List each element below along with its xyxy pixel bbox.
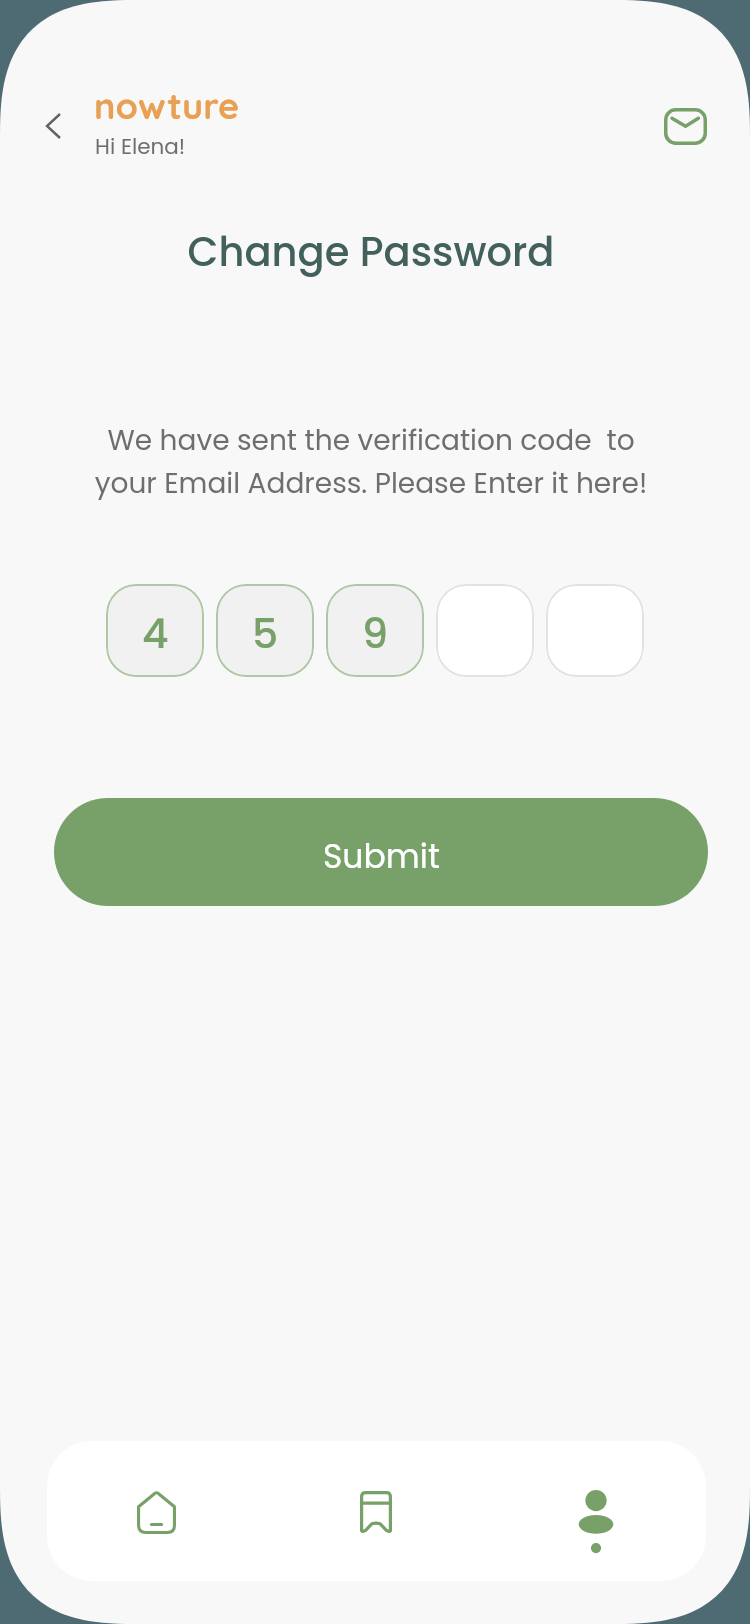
button[interactable]: Submit [54, 798, 708, 906]
button[interactable] [436, 584, 534, 677]
button[interactable]: Mail [653, 94, 717, 158]
staticText: We have sent the verification code to yo… [0, 421, 746, 502]
staticText: Change Password [0, 224, 746, 280]
staticText: Submit [323, 833, 440, 879]
button[interactable]: 9 [326, 584, 424, 677]
button[interactable] [546, 584, 644, 677]
staticText: 9 [362, 605, 389, 662]
staticText: 4 [142, 605, 169, 662]
button[interactable]: Back [26, 99, 80, 153]
staticText: 5 [252, 605, 279, 662]
button[interactable]: Bookmarks [266, 1441, 486, 1581]
button[interactable]: Profile [486, 1441, 706, 1581]
staticText: nowture [94, 83, 240, 128]
button[interactable]: 4 [106, 584, 204, 677]
button[interactable]: 5 [216, 584, 314, 677]
button[interactable]: Home [47, 1441, 266, 1581]
staticText: Hi Elena! [95, 131, 186, 161]
